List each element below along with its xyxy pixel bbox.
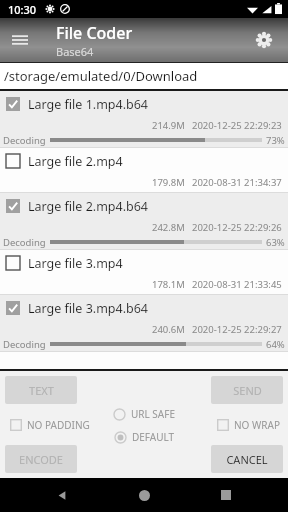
staticText: Large file 2.mp4 xyxy=(28,153,123,170)
button[interactable]: Large file 1.mp4.b64 xyxy=(0,91,288,148)
staticText: 10:30 xyxy=(8,2,37,17)
staticText: 2020-12-25 22:29:26 xyxy=(192,221,282,234)
staticText: Large file 2.mp4.b64 xyxy=(28,198,149,215)
button[interactable]: Recents xyxy=(206,478,246,512)
staticText: TEXT xyxy=(29,383,54,398)
staticText: 2020-08-31 21:34:37 xyxy=(192,176,282,189)
staticText: ENCODE xyxy=(19,452,63,467)
button[interactable]: URL SAFE xyxy=(113,407,175,421)
button[interactable]: Large file 3.mp4.b64 xyxy=(0,295,288,352)
button[interactable]: DEFAULT xyxy=(114,430,175,444)
button[interactable]: TEXT xyxy=(5,376,77,404)
staticText: Decoding xyxy=(3,134,46,147)
button[interactable]: Large file 2.mp4.b64 xyxy=(0,193,288,250)
button[interactable]: Menu xyxy=(0,20,40,60)
staticText: Large file 3.mp4 xyxy=(28,255,123,272)
button[interactable]: ENCODE xyxy=(5,445,77,473)
staticText: 240.6M xyxy=(152,323,185,336)
staticText: Decoding xyxy=(3,236,46,249)
staticText: NO PADDING xyxy=(27,418,90,432)
staticText: /storage/emulated/0/Download xyxy=(4,67,198,85)
button[interactable]: /storage/emulated/0/Download xyxy=(0,63,288,89)
button[interactable]: Back xyxy=(42,478,82,512)
staticText: NO WRAP xyxy=(234,418,280,432)
button[interactable]: SEND xyxy=(211,376,283,404)
staticText: File Coder xyxy=(56,22,133,44)
button[interactable]: CANCEL xyxy=(211,445,283,473)
button[interactable]: NO WRAP xyxy=(217,418,280,432)
staticText: 214.9M xyxy=(152,119,185,132)
button[interactable]: Home xyxy=(124,478,164,512)
staticText: 178.1M xyxy=(152,278,185,291)
button[interactable]: Large file 3.mp4 xyxy=(0,250,288,295)
staticText: SEND xyxy=(233,383,262,398)
staticText: DEFAULT xyxy=(132,430,175,444)
button[interactable]: Large file 2.mp4 xyxy=(0,148,288,193)
staticText: 242.8M xyxy=(152,221,185,234)
staticText: Large file 1.mp4.b64 xyxy=(28,96,149,113)
staticText: 2020-12-25 22:29:23 xyxy=(192,119,282,132)
staticText: Large file 3.mp4.b64 xyxy=(28,300,149,317)
staticText: Decoding xyxy=(3,338,46,351)
staticText: 2020-08-31 21:33:45 xyxy=(192,278,282,291)
staticText: 179.8M xyxy=(152,176,185,189)
staticText: 64% xyxy=(266,338,285,351)
staticText: 2020-12-25 22:29:27 xyxy=(192,323,282,336)
staticText: 73% xyxy=(266,134,285,147)
staticText: URL SAFE xyxy=(131,407,175,421)
staticText: 63% xyxy=(266,236,285,249)
staticText: Base64 xyxy=(56,44,94,59)
button[interactable]: Settings xyxy=(244,20,284,60)
button[interactable]: NO PADDING xyxy=(10,418,90,432)
staticText: CANCEL xyxy=(226,452,268,467)
